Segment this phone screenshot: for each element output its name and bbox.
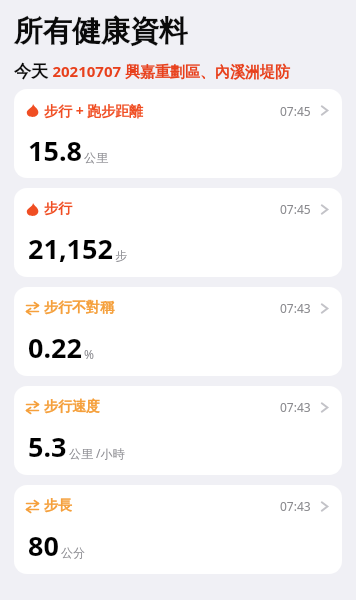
staticText: 07:43: [280, 399, 311, 415]
staticText: 07:43: [280, 300, 311, 316]
staticText: 步: [115, 248, 127, 263]
button[interactable]: 步行速度: [14, 386, 342, 475]
staticText: 07:45: [280, 103, 311, 119]
staticText: 步行速度: [44, 398, 100, 416]
button[interactable]: 步行 + 跑步距離: [14, 89, 342, 178]
other: Open detail: [320, 103, 329, 118]
staticText: 步長: [44, 497, 72, 515]
staticText: 07:45: [280, 201, 311, 217]
staticText: 07:43: [280, 498, 311, 514]
other: Open detail: [320, 202, 329, 217]
staticText: 21,152: [28, 230, 113, 267]
button[interactable]: 步行: [14, 188, 342, 277]
staticText: 今天 20210707 興嘉重劃區、內溪洲堤防: [14, 59, 290, 82]
staticText: 步行 + 跑步距離: [44, 101, 144, 120]
staticText: 0.22: [28, 329, 82, 366]
other: Open detail: [320, 400, 329, 415]
staticText: 公分: [61, 545, 85, 560]
other: Open detail: [320, 301, 329, 316]
staticText: %: [84, 346, 94, 362]
button[interactable]: 步長: [14, 485, 342, 574]
staticText: 步行不對稱: [44, 299, 114, 317]
staticText: 公里: [84, 150, 108, 165]
staticText: 15.8: [28, 132, 82, 169]
staticText: 步行: [44, 200, 72, 218]
staticText: 80: [28, 527, 59, 564]
other: Open detail: [320, 499, 329, 514]
staticText: 所有健康資料: [14, 13, 188, 50]
staticText: 5.3: [28, 428, 67, 465]
button[interactable]: 步行不對稱: [14, 287, 342, 376]
staticText: 公里 /小時: [69, 445, 125, 461]
